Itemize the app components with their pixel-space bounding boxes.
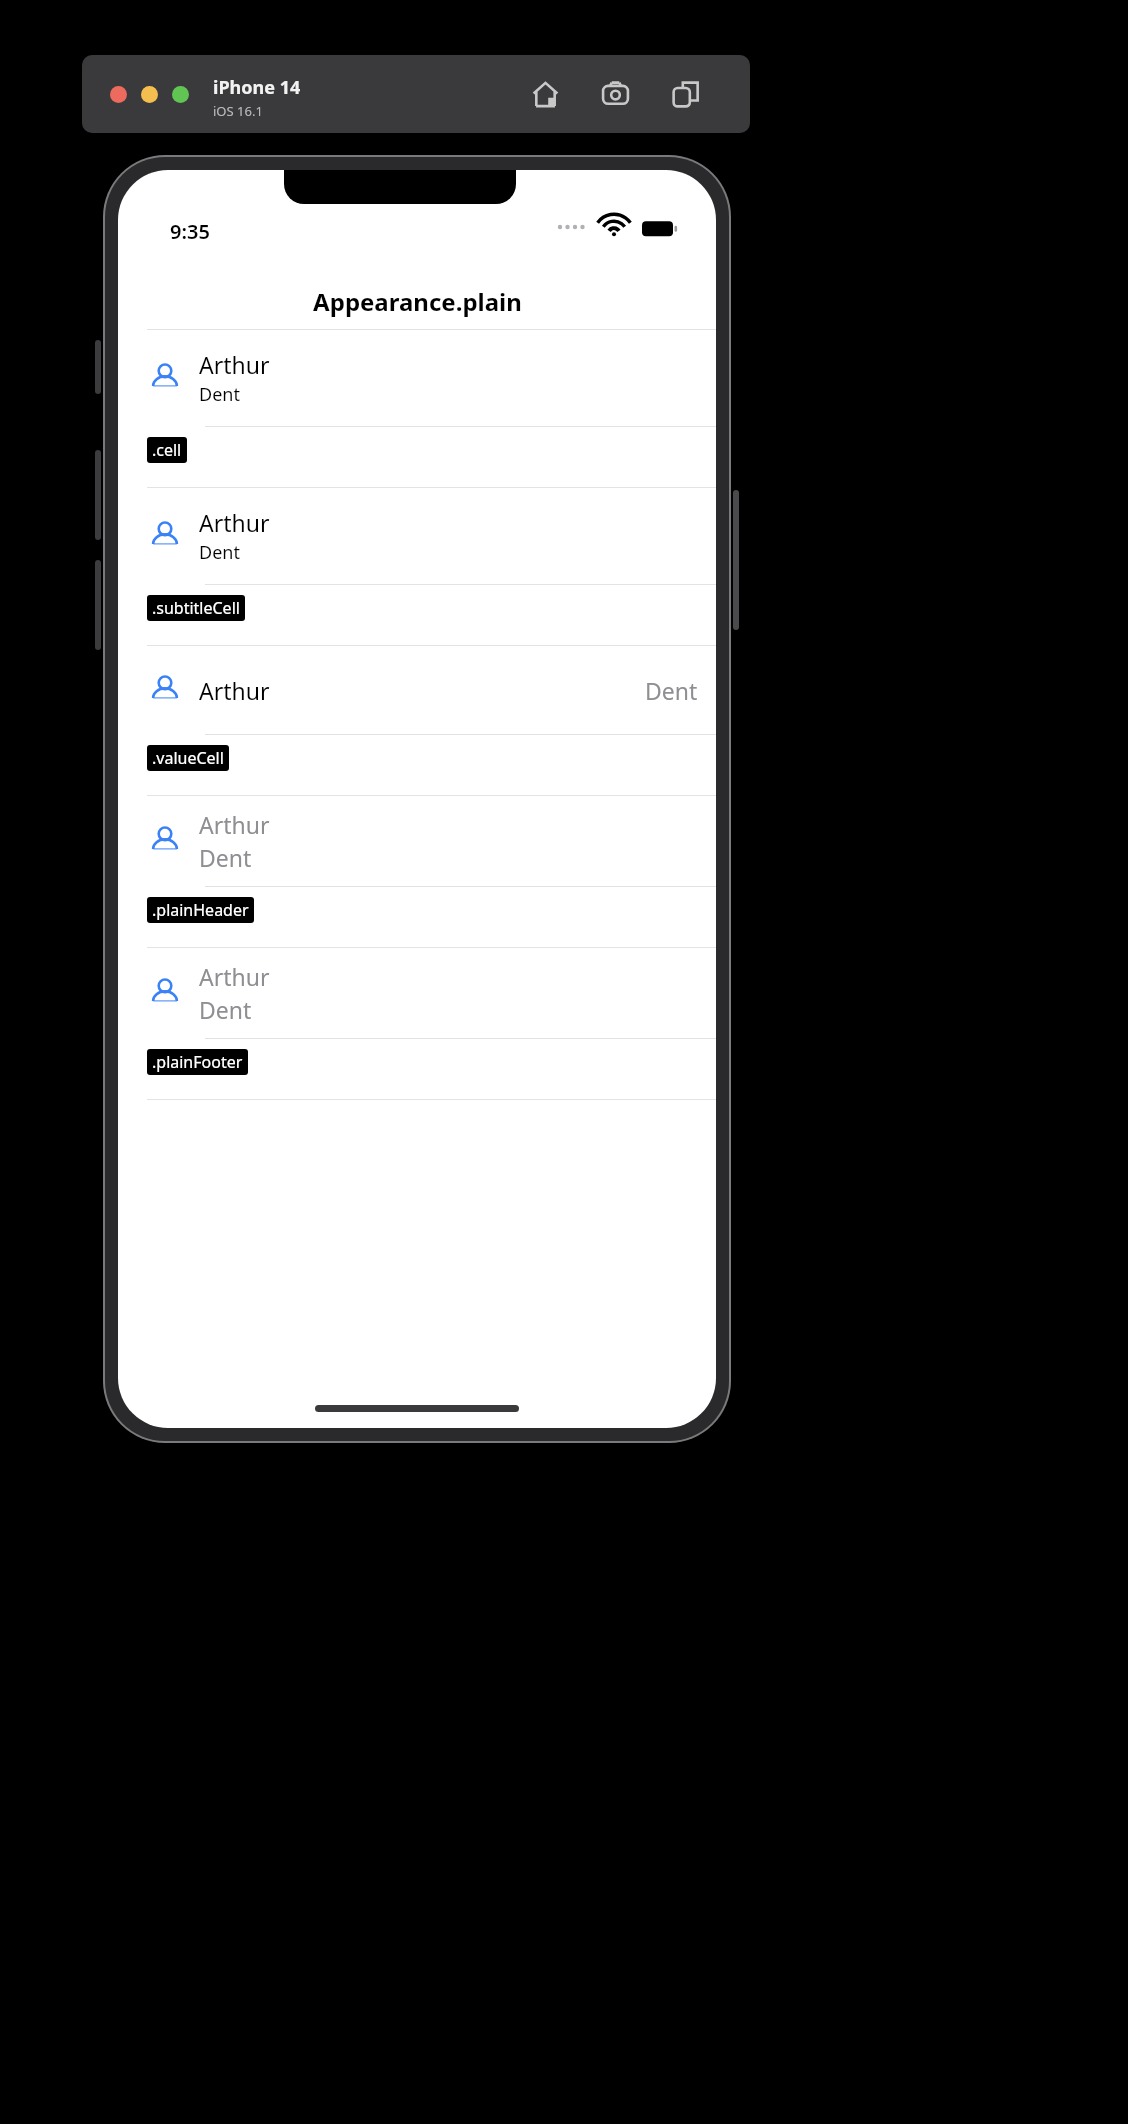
button[interactable]: .subtitleCell (147, 595, 245, 621)
staticText: Arthur (199, 349, 270, 380)
button[interactable]: .plainFooter (147, 1049, 248, 1075)
button[interactable]: Minimize (141, 86, 158, 103)
staticText: Dent (199, 842, 252, 873)
staticText: Dent (645, 675, 698, 706)
staticText: Dent (199, 540, 240, 565)
staticText: .subtitleCell (152, 597, 240, 619)
button[interactable]: Person (118, 948, 716, 1038)
other: Person (147, 672, 183, 708)
staticText: Arthur (199, 809, 270, 840)
other: Person (147, 518, 183, 554)
staticText: 9:35 (170, 218, 210, 245)
button[interactable]: .cell (147, 437, 187, 463)
staticText: Arthur (199, 961, 270, 992)
button[interactable]: Person (118, 488, 716, 584)
staticText: .cell (152, 439, 182, 461)
staticText: Appearance.plain (313, 285, 522, 318)
button[interactable]: Zoom (172, 86, 189, 103)
button[interactable]: Person (118, 796, 716, 886)
staticText: .plainFooter (152, 1051, 243, 1073)
staticText: Dent (199, 994, 252, 1025)
staticText: iPhone 14 (213, 75, 301, 100)
button[interactable]: Person (118, 330, 716, 426)
button[interactable]: Record screen (667, 76, 703, 112)
staticText: iOS 16.1 (213, 102, 263, 120)
staticText: Arthur (199, 507, 270, 538)
staticText: Dent (199, 382, 240, 407)
other: Person (147, 823, 183, 859)
button[interactable]: Close (110, 86, 127, 103)
other: Person (147, 975, 183, 1011)
staticText: Arthur (199, 675, 270, 706)
staticText: .valueCell (152, 747, 224, 769)
other: Person (147, 360, 183, 396)
button[interactable]: .plainHeader (147, 897, 254, 923)
button[interactable]: Home (527, 76, 563, 112)
button[interactable]: Screenshot (597, 76, 633, 112)
button[interactable]: Person (118, 646, 716, 734)
button[interactable]: .valueCell (147, 745, 229, 771)
staticText: .plainHeader (152, 899, 249, 921)
